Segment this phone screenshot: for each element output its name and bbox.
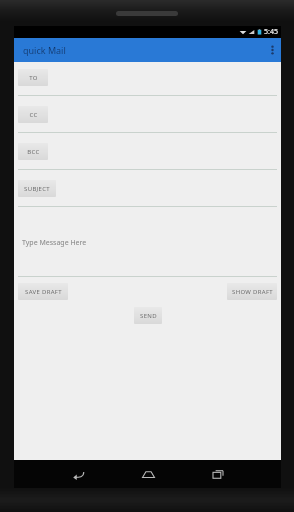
staticText: Type Message Here	[22, 238, 87, 248]
button[interactable]: More options	[263, 38, 281, 62]
button[interactable]: BCC	[18, 143, 48, 160]
staticText: BCC	[27, 148, 40, 156]
staticText: CC	[29, 111, 38, 119]
staticText: 5:45	[264, 27, 278, 37]
staticText: TO	[29, 74, 38, 82]
staticText: SHOW DRAFT	[232, 288, 273, 296]
button[interactable]: SEND	[134, 307, 162, 324]
button[interactable]: SHOW DRAFT	[227, 283, 277, 300]
button[interactable]: CC	[18, 106, 48, 123]
button[interactable]: Home	[126, 460, 170, 488]
button[interactable]: SAVE DRAFT	[18, 283, 68, 300]
button[interactable]: TO	[18, 69, 48, 86]
staticText: SEND	[140, 312, 157, 320]
staticText: SUBJECT	[24, 185, 50, 193]
staticText: SAVE DRAFT	[25, 288, 62, 296]
button[interactable]: Recent apps	[196, 460, 240, 488]
button[interactable]: Back	[56, 460, 100, 488]
button[interactable]: SUBJECT	[18, 180, 56, 197]
staticText: quick Mail	[23, 44, 66, 56]
